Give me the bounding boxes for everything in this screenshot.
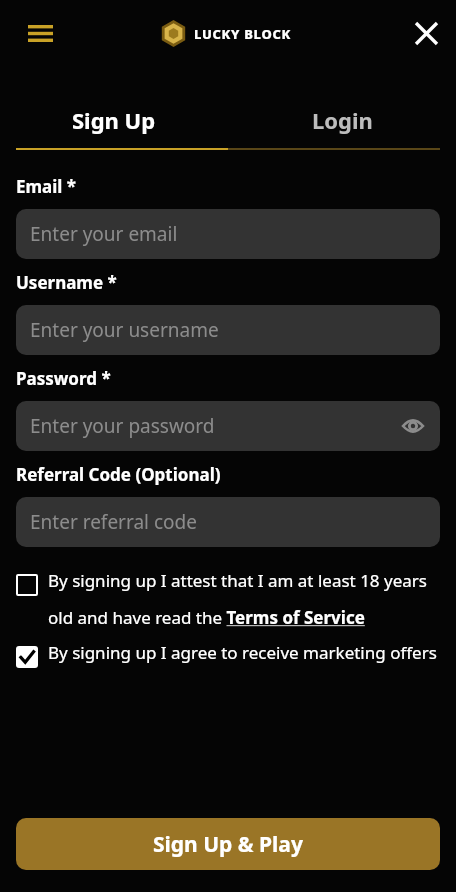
staticText: Enter your email [30, 221, 178, 247]
staticText: Sign Up [72, 105, 156, 135]
staticText: By signing up I agree to receive marketi… [48, 641, 437, 664]
button[interactable]: Login [228, 100, 456, 140]
staticText: Login [312, 105, 373, 135]
staticText: Username * [16, 271, 117, 294]
staticText: LUCKY BLOCK [194, 25, 292, 43]
button[interactable]: Sign Up & Play [16, 818, 440, 870]
button[interactable]: Sign Up [0, 100, 228, 140]
button[interactable]: Enter your username [16, 305, 440, 355]
staticText: Enter your password [30, 413, 215, 439]
button[interactable]: Enter your password [16, 401, 440, 451]
button[interactable]: By signing up I agree to receive marketi… [16, 641, 440, 664]
staticText: By signing up I attest that I am at leas… [48, 569, 440, 629]
button[interactable]: Enter referral code [16, 497, 440, 547]
staticText: Enter your username [30, 317, 219, 343]
button[interactable]: Enter your email [16, 209, 440, 259]
staticText: Sign Up & Play [153, 830, 303, 859]
button[interactable]: By signing up I attest that I am at leas… [16, 569, 440, 629]
staticText: Email * [16, 175, 77, 198]
staticText: Password * [16, 367, 111, 390]
button[interactable]: Close [402, 9, 450, 57]
staticText: Enter referral code [30, 509, 197, 535]
button[interactable]: Show password [396, 409, 430, 443]
button[interactable]: Menu [18, 11, 62, 55]
staticText: Referral Code (Optional) [16, 463, 221, 486]
